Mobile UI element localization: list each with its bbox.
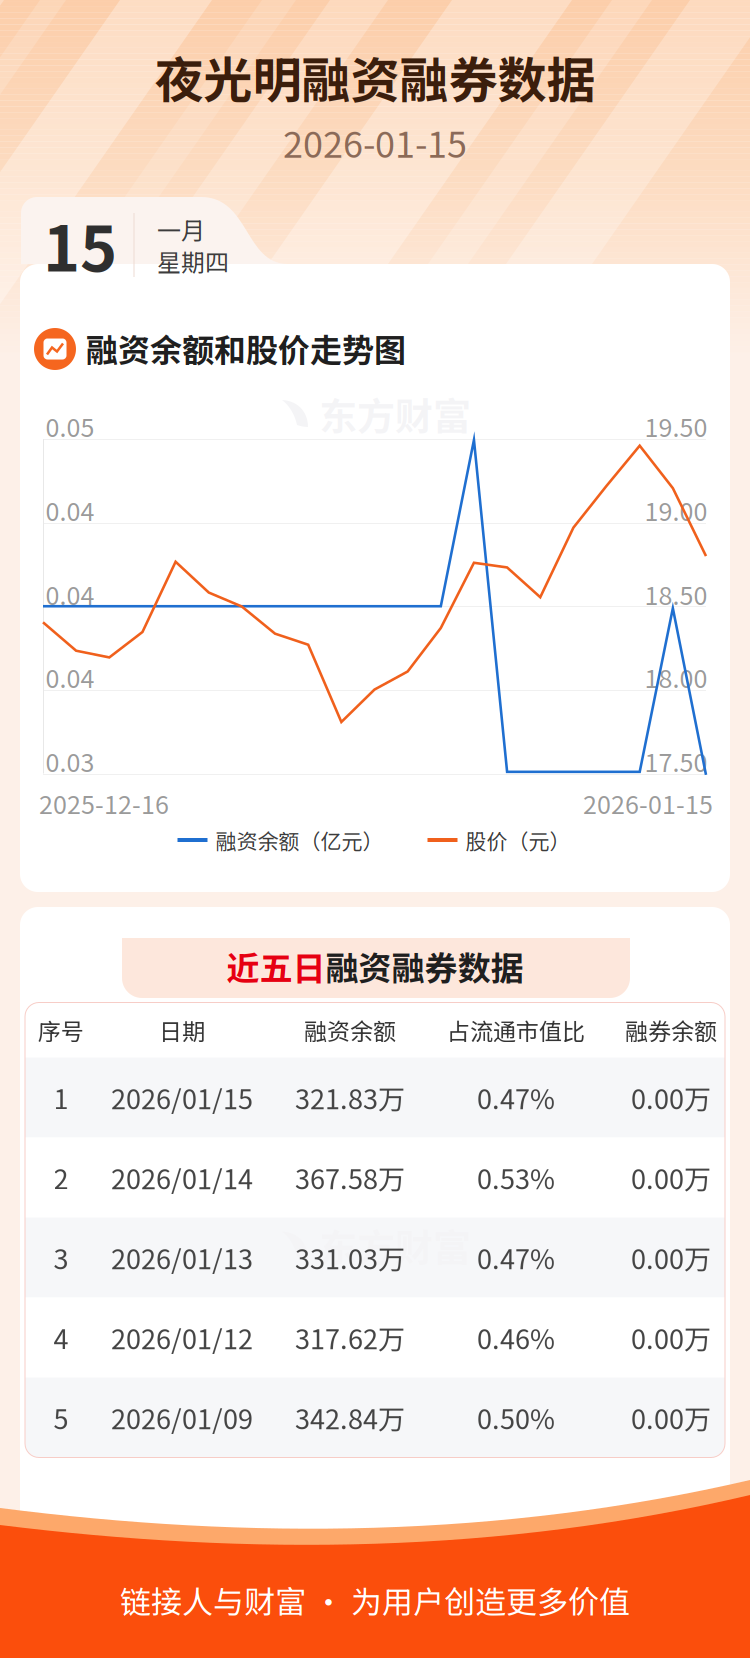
staticText: 链接人与财富 · 为用户创造更多价值 — [120, 1578, 630, 1622]
staticText: 占流通市值比 — [447, 1013, 585, 1047]
staticText: 0.50% — [477, 1398, 555, 1437]
staticText: 0.47% — [477, 1238, 555, 1277]
staticText: 2026/01/12 — [111, 1318, 253, 1357]
staticText: 0.04 — [45, 659, 94, 695]
staticText: 331.03万 — [295, 1238, 405, 1277]
staticText: 夜光明融资融券数据 — [154, 41, 595, 112]
staticText: 融资余额（亿元） — [215, 825, 383, 855]
staticText: 18.50 — [644, 576, 707, 612]
staticText: 15 — [43, 198, 117, 290]
staticText: 2026/01/09 — [111, 1398, 253, 1437]
staticText: 0.00万 — [631, 1238, 711, 1277]
staticText: 2026/01/14 — [111, 1158, 253, 1197]
staticText: 0.00万 — [631, 1158, 711, 1197]
staticText: 东方财富 — [319, 1218, 471, 1273]
staticText: 序号 — [38, 1013, 84, 1047]
staticText: 0.04 — [45, 576, 94, 612]
staticText: 星期四 — [157, 244, 229, 278]
staticText: 2026/01/13 — [111, 1238, 253, 1277]
staticText: 4 — [53, 1318, 68, 1357]
staticText: 0.47% — [477, 1078, 555, 1117]
staticText: 融券余额 — [625, 1013, 717, 1047]
staticText: 2026-01-15 — [583, 785, 713, 821]
staticText: 317.62万 — [295, 1318, 405, 1357]
staticText: 342.84万 — [295, 1398, 405, 1437]
staticText: 5 — [53, 1398, 68, 1437]
staticText: 17.50 — [644, 743, 707, 779]
staticText: 19.50 — [644, 408, 707, 444]
staticText: 0.05 — [45, 408, 94, 444]
staticText: 321.83万 — [295, 1078, 405, 1117]
staticText: 0.53% — [477, 1158, 555, 1197]
staticText: 367.58万 — [295, 1158, 405, 1197]
staticText: 融资融券数据 — [325, 942, 523, 990]
staticText: 1 — [53, 1078, 68, 1117]
staticText: 股价（元） — [465, 825, 570, 855]
staticText: 一月 — [157, 212, 205, 246]
staticText: 0.46% — [477, 1318, 555, 1357]
staticText: 0.00万 — [631, 1398, 711, 1437]
staticText: 2026/01/15 — [111, 1078, 253, 1117]
staticText: 18.00 — [644, 659, 707, 695]
staticText: 东方财富 — [319, 386, 471, 441]
staticText: 2 — [53, 1158, 68, 1197]
staticText: 0.00万 — [631, 1078, 711, 1117]
staticText: 2026-01-15 — [283, 116, 467, 168]
staticText: 日期 — [159, 1013, 205, 1047]
staticText: 近五日 — [226, 942, 325, 990]
staticText: 3 — [53, 1238, 68, 1277]
staticText: 2025-12-16 — [39, 785, 169, 821]
staticText: 融资余额 — [304, 1013, 396, 1047]
staticText: 融资余额和股价走势图 — [86, 325, 406, 371]
staticText: 19.00 — [644, 492, 707, 528]
staticText: 0.00万 — [631, 1318, 711, 1357]
staticText: 0.03 — [45, 743, 94, 779]
staticText: 0.04 — [45, 492, 94, 528]
